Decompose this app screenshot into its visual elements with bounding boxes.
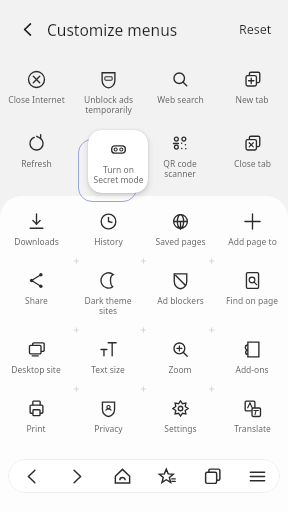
- button[interactable]: Translate: [234, 399, 271, 435]
- button[interactable]: Refresh: [21, 134, 52, 170]
- staticText: New tab: [235, 94, 269, 106]
- staticText: Downloads: [14, 236, 59, 248]
- button[interactable]: Back: [14, 16, 40, 42]
- staticText: Unblock ads temporarily: [84, 94, 133, 116]
- button[interactable]: Find on page: [226, 271, 278, 307]
- staticText: Ad blockers: [157, 295, 204, 307]
- button[interactable]: Turn on Secret mode: [88, 130, 148, 193]
- staticText: Dark theme sites: [84, 295, 132, 317]
- button[interactable]: Web search: [157, 70, 204, 106]
- staticText: Web search: [157, 94, 204, 106]
- button[interactable]: Tabs: [190, 459, 235, 493]
- button[interactable]: Home: [100, 459, 145, 493]
- button[interactable]: Close Internet: [8, 70, 65, 106]
- button[interactable]: Zoom: [168, 340, 192, 376]
- button[interactable]: Print: [26, 399, 46, 435]
- button[interactable]: New tab: [235, 70, 269, 106]
- button[interactable]: Close tab: [234, 134, 271, 170]
- staticText: Close tab: [234, 158, 271, 170]
- button[interactable]: Dark theme sites: [84, 271, 132, 317]
- button[interactable]: Reset: [237, 15, 274, 44]
- staticText: Share: [25, 295, 48, 307]
- staticText: Find on page: [226, 295, 278, 307]
- button[interactable]: Downloads: [14, 212, 59, 248]
- button[interactable]: Bookmarks: [145, 459, 190, 493]
- staticText: Privacy: [94, 423, 123, 435]
- button[interactable]: Privacy: [94, 399, 123, 435]
- staticText: Add-ons: [235, 364, 269, 376]
- staticText: History: [94, 236, 123, 248]
- staticText: Refresh: [21, 158, 52, 170]
- button[interactable]: Desktop site: [11, 340, 61, 376]
- button[interactable]: Menu: [235, 459, 280, 493]
- button[interactable]: Ad blockers: [157, 271, 204, 307]
- staticText: Print: [26, 423, 46, 435]
- staticText: Saved pages: [155, 236, 206, 248]
- button[interactable]: Unblock ads temporarily: [84, 70, 133, 116]
- button[interactable]: Forward: [54, 459, 100, 493]
- staticText: Reset: [239, 21, 272, 38]
- staticText: Settings: [164, 423, 197, 435]
- button[interactable]: QR code scanner: [163, 134, 197, 180]
- button[interactable]: Settings: [164, 399, 197, 435]
- button[interactable]: Back: [8, 459, 54, 493]
- staticText: Add page to: [228, 236, 277, 248]
- staticText: Close Internet: [8, 94, 65, 106]
- button[interactable]: Share: [25, 271, 48, 307]
- staticText: Turn on Secret mode: [93, 164, 144, 186]
- staticText: Translate: [234, 423, 271, 435]
- staticText: Customize menus: [47, 19, 178, 40]
- staticText: Zoom: [168, 364, 192, 376]
- button[interactable]: Add page to: [228, 212, 277, 248]
- staticText: QR code scanner: [163, 158, 197, 180]
- button[interactable]: Text size: [91, 340, 125, 376]
- button[interactable]: History: [94, 212, 123, 248]
- staticText: Text size: [91, 364, 125, 376]
- button[interactable]: Saved pages: [155, 212, 206, 248]
- staticText: Desktop site: [11, 364, 61, 376]
- button[interactable]: Add-ons: [235, 340, 269, 376]
